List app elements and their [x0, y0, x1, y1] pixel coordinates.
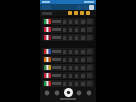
- button[interactable]: Sort column: [68, 11, 72, 15]
- button[interactable]: Details: [42, 26, 94, 33]
- button[interactable]: Navigation: [44, 90, 50, 96]
- button[interactable]: Sort column: [80, 11, 84, 15]
- button[interactable]: Toolbar action: [89, 5, 94, 10]
- button[interactable]: Navigation: [76, 90, 82, 96]
- button[interactable]: Details: [42, 72, 94, 79]
- button[interactable]: Details: [42, 34, 94, 41]
- button[interactable]: Standings: [64, 88, 73, 97]
- button[interactable]: Details: [42, 48, 94, 55]
- button[interactable]: Details: [42, 64, 94, 71]
- button[interactable]: Details: [42, 18, 94, 25]
- button[interactable]: Sort column: [86, 11, 90, 15]
- button[interactable]: Details: [42, 56, 94, 63]
- button[interactable]: Navigation: [54, 90, 60, 96]
- button[interactable]: Navigation: [86, 90, 92, 96]
- button[interactable]: Sort column: [74, 11, 78, 15]
- button[interactable]: Details: [42, 80, 94, 87]
